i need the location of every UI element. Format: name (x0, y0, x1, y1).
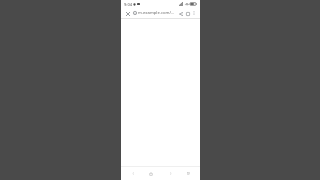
button[interactable]: More options (191, 10, 197, 16)
button[interactable]: Share (177, 10, 184, 17)
button[interactable]: m.example.com/p/1 (132, 8, 176, 18)
button[interactable]: Switch tabs (184, 10, 191, 17)
button[interactable]: Bookmarks (181, 168, 195, 179)
button[interactable]: Home (144, 168, 158, 179)
staticText: 9:04 (124, 2, 132, 7)
button[interactable]: Close (124, 10, 131, 17)
staticText: m.example.com/p/1 (138, 10, 175, 16)
